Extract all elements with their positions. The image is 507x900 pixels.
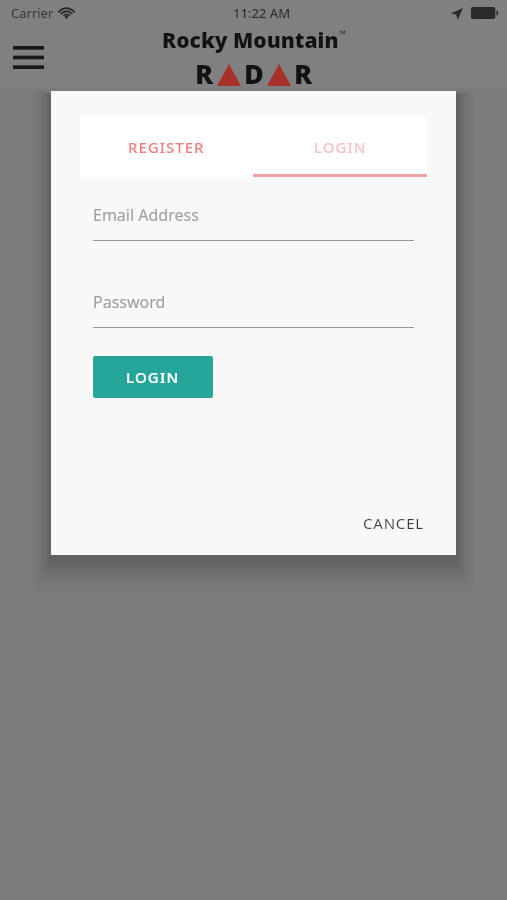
staticText: Rocky Mountain bbox=[162, 26, 339, 55]
staticText: LOGIN bbox=[314, 137, 367, 157]
staticText: Email Address bbox=[93, 204, 199, 226]
staticText: LOGIN bbox=[126, 367, 180, 387]
button[interactable]: Password bbox=[93, 291, 414, 328]
other: Location active bbox=[450, 7, 463, 20]
staticText: CANCEL bbox=[363, 513, 424, 533]
staticText: D bbox=[244, 55, 264, 88]
button[interactable]: LOGIN bbox=[253, 117, 427, 177]
staticText: REGISTER bbox=[128, 137, 205, 157]
staticText: Password bbox=[93, 291, 166, 313]
button[interactable]: REGISTER bbox=[80, 117, 253, 177]
button[interactable]: CANCEL bbox=[353, 505, 434, 541]
button[interactable]: Open navigation menu bbox=[4, 33, 52, 81]
staticText: ™ bbox=[339, 27, 346, 39]
staticText: R bbox=[294, 55, 313, 88]
staticText: Carrier bbox=[11, 4, 54, 22]
staticText: 11:22 AM bbox=[233, 4, 291, 22]
staticText: R bbox=[195, 55, 214, 88]
button[interactable]: Email Address bbox=[93, 204, 414, 241]
button[interactable]: LOGIN bbox=[93, 356, 213, 398]
